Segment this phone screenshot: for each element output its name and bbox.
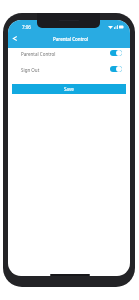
staticText: Sign Out (21, 67, 40, 73)
button[interactable]: Save (12, 84, 126, 94)
staticText: 7:06 (22, 24, 31, 30)
staticText: Parental Control (53, 36, 89, 42)
button[interactable]: Parental Control (8, 46, 130, 60)
button[interactable]: Back (8, 32, 21, 45)
button[interactable]: Sign Out (8, 62, 130, 76)
staticText: Save (64, 86, 74, 92)
staticText: Parental Control (21, 51, 56, 57)
